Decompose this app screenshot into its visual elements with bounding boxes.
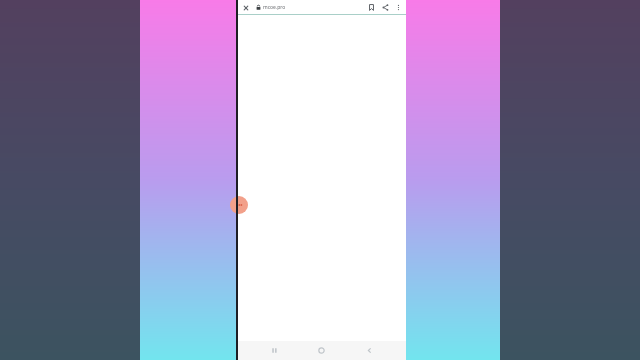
staticText: mcoe.pro (263, 4, 286, 11)
button[interactable]: Chat (230, 196, 248, 214)
button[interactable]: Recents (264, 341, 284, 360)
button[interactable]: Home (311, 341, 331, 360)
button[interactable]: Bookmark (364, 0, 378, 14)
button[interactable]: Close (240, 2, 251, 13)
button[interactable]: Share (378, 0, 392, 14)
button[interactable]: Back (359, 341, 379, 360)
button[interactable]: mcoe.pro (256, 4, 364, 11)
button[interactable]: More options (392, 1, 404, 13)
